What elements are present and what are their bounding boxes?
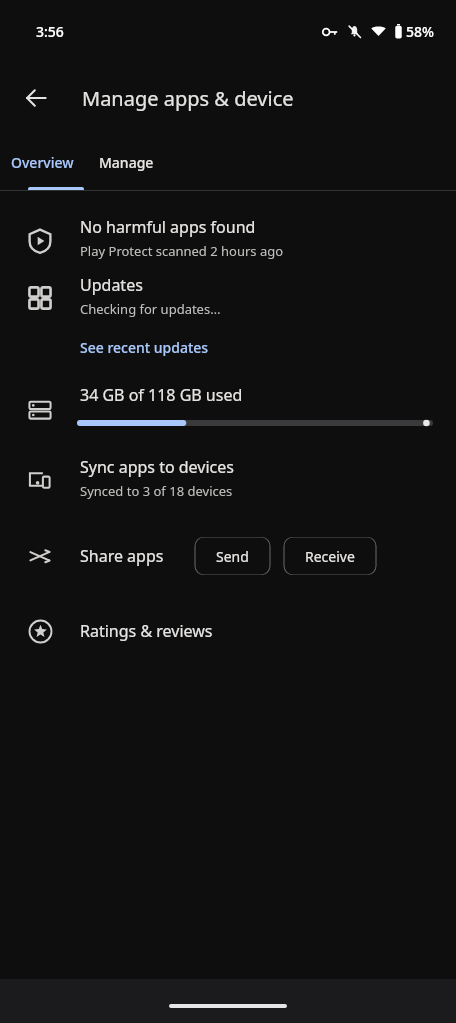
- staticText: No harmful apps found: [80, 216, 256, 238]
- staticText: See recent updates: [80, 338, 209, 357]
- button[interactable]: Manage: [84, 134, 168, 190]
- staticText: Share apps: [80, 545, 164, 567]
- staticText: Play Protect scanned 2 hours ago: [80, 242, 284, 260]
- button[interactable]: Sync apps to devices: [0, 456, 456, 518]
- staticText: Receive: [305, 547, 355, 566]
- button[interactable]: 34 GB of 118 GB used: [0, 384, 456, 456]
- staticText: 3:56: [36, 22, 64, 41]
- staticText: Send: [216, 547, 249, 566]
- staticText: Ratings & reviews: [80, 620, 213, 642]
- staticText: Sync apps to devices: [80, 456, 234, 478]
- staticText: 34 GB of 118 GB used: [80, 384, 243, 406]
- button[interactable]: Back: [12, 74, 60, 122]
- button[interactable]: Ratings & reviews: [0, 594, 456, 668]
- staticText: 58%: [406, 22, 434, 41]
- staticText: Synced to 3 of 18 devices: [80, 482, 233, 500]
- button[interactable]: Send: [194, 537, 271, 575]
- staticText: Manage: [99, 153, 154, 172]
- button[interactable]: Updates: [0, 274, 456, 384]
- staticText: Manage apps & device: [82, 85, 294, 112]
- staticText: Updates: [80, 274, 143, 296]
- staticText: Overview: [11, 153, 74, 172]
- button[interactable]: No harmful apps found: [0, 216, 456, 274]
- button[interactable]: Receive: [283, 537, 377, 575]
- button[interactable]: See recent updates: [80, 338, 209, 357]
- button[interactable]: Overview: [0, 134, 84, 190]
- staticText: Checking for updates…: [80, 300, 221, 318]
